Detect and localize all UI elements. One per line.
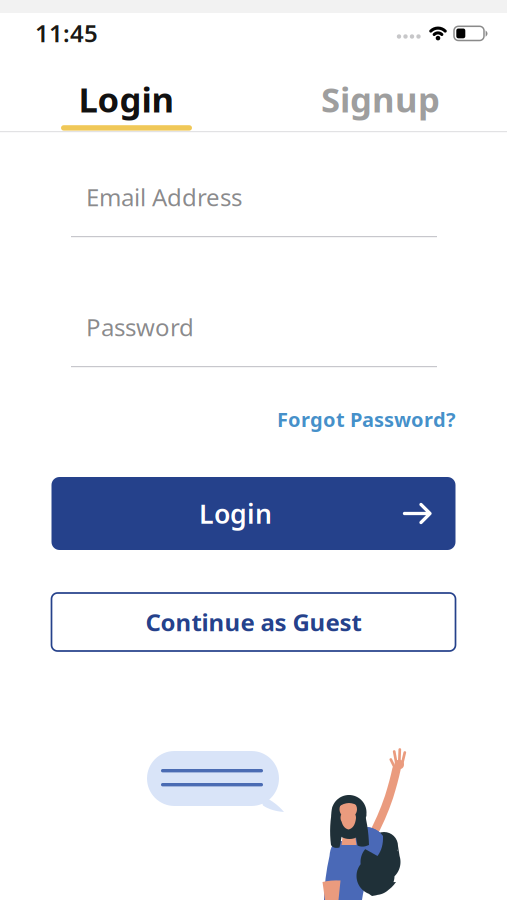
staticText: Login xyxy=(199,496,272,531)
button[interactable]: Email Address xyxy=(71,181,437,238)
button[interactable]: Continue as Guest xyxy=(51,593,455,651)
button[interactable]: Forgot Password? xyxy=(277,406,456,433)
button[interactable]: Login xyxy=(51,477,455,550)
staticText: Continue as Guest xyxy=(145,606,361,638)
staticText: Login xyxy=(78,76,174,122)
staticText: Email Address xyxy=(86,181,242,213)
button[interactable]: Login xyxy=(0,76,253,122)
button[interactable]: Signup xyxy=(254,76,507,122)
staticText: 11:45 xyxy=(35,17,98,49)
staticText: Forgot Password? xyxy=(277,406,456,433)
button[interactable]: Password xyxy=(71,311,437,368)
staticText: Signup xyxy=(321,76,440,122)
staticText: Password xyxy=(86,311,194,343)
